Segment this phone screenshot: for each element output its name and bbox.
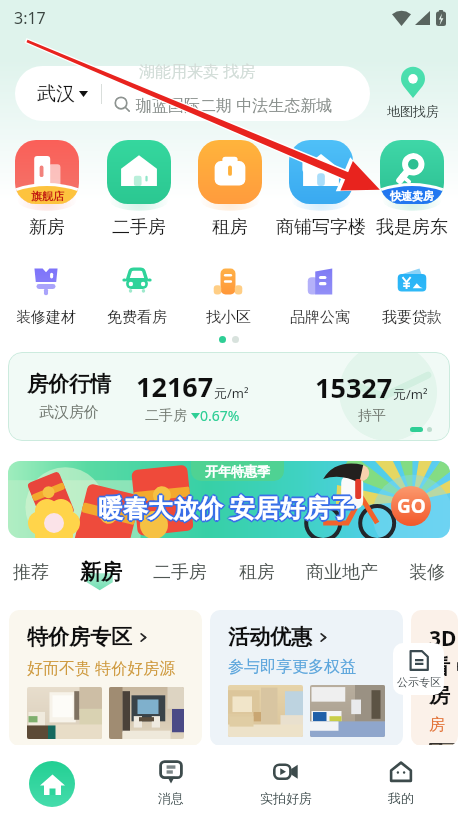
staticText: 珈蓝国际二期 中法生态新城 [136, 94, 333, 116]
staticText: 免费看房 [107, 308, 167, 327]
staticText: 3D看房 [429, 624, 458, 708]
staticText: 实拍好房 [260, 790, 312, 806]
other: 地图找房 [401, 69, 425, 98]
button[interactable]: 武汉 [15, 66, 370, 121]
other: 首页 [29, 761, 75, 807]
button[interactable]: 装修 [404, 558, 450, 587]
button[interactable]: 消息 [114, 745, 228, 820]
staticText: 快速卖房 [390, 189, 434, 203]
staticText: 商业地产 [306, 561, 378, 584]
staticText: 二手房 [112, 216, 166, 239]
button[interactable]: 我要贷款 [366, 266, 458, 327]
staticText: 武汉 [37, 82, 75, 106]
staticText: 12167 [136, 368, 214, 405]
staticText: 新房 [29, 216, 65, 239]
button[interactable]: 装修建材 [0, 266, 91, 327]
staticText: 暖春大放价 安居好房子 [97, 491, 354, 525]
staticText: 15327 [315, 369, 393, 406]
button[interactable]: 房价行情 [8, 352, 450, 441]
staticText: 活动优惠 [228, 624, 312, 650]
staticText: 暖春大放价 安居好房子 [97, 489, 354, 523]
staticText: 旗舰店 [31, 189, 64, 203]
button[interactable]: 地图找房 [373, 69, 453, 119]
staticText: 租房 [212, 216, 248, 239]
staticText: 暖春大放价 安居好房子 [96, 490, 353, 524]
button[interactable]: 实拍好房 [228, 745, 343, 820]
button[interactable]: 商业地产 [301, 558, 383, 587]
staticText: 公示专区 [397, 675, 441, 689]
button[interactable]: 推荐 [8, 558, 54, 587]
staticText: 暖春大放价 安居好房子 [98, 488, 355, 522]
button[interactable]: 旗舰店 [1, 140, 93, 239]
staticText: 参与即享更多权益 [228, 657, 356, 677]
staticText: 暖春大放价 安居好房子 [98, 492, 355, 526]
staticText: 房源全景看 [429, 715, 458, 735]
button[interactable]: 找小区 [182, 266, 274, 327]
staticText: 推荐 [13, 561, 49, 584]
staticText: 湖能用来卖 找房 [139, 60, 256, 82]
staticText: 找小区 [206, 308, 251, 327]
button[interactable]: 公示专区 [393, 643, 444, 695]
staticText: 0.67% [200, 406, 240, 425]
staticText: 二手房 [145, 407, 187, 425]
staticText: 持平 [358, 407, 386, 425]
staticText: 暖春大放价 安居好房子 [98, 490, 355, 524]
staticText: GO [397, 493, 426, 519]
staticText: 商铺写字楼 [276, 216, 366, 239]
staticText: 特价房专区 [27, 624, 132, 650]
button[interactable]: 首页 [0, 745, 114, 820]
staticText: 3:17 [14, 7, 46, 29]
button[interactable]: 新房 [75, 556, 127, 588]
staticText: 我要贷款 [382, 308, 442, 327]
staticText: 装修 [409, 561, 445, 584]
button[interactable]: 活动优惠 [210, 610, 403, 746]
staticText: 地图找房 [387, 103, 439, 119]
button[interactable]: 品牌公寓 [274, 266, 366, 327]
button[interactable]: 快速卖房 [366, 140, 457, 239]
staticText: 租房 [239, 561, 275, 584]
button[interactable]: 免费看房 [91, 266, 182, 327]
staticText: 暖春大放价 安居好房子 [99, 491, 356, 525]
staticText: 装修建材 [16, 308, 76, 327]
staticText: 暖春大放价 安居好房子 [99, 489, 356, 523]
button[interactable]: 二手房 [93, 140, 184, 239]
button[interactable]: 3D看房 [411, 610, 458, 746]
staticText: 二手房 [153, 561, 207, 584]
staticText: 元/m² [214, 384, 249, 402]
staticText: 武汉房价 [39, 403, 99, 422]
staticText: 开年特惠季 [205, 463, 270, 479]
button[interactable]: 租房 [234, 558, 280, 587]
staticText: 我是房东 [376, 216, 448, 239]
staticText: 品牌公寓 [290, 308, 350, 327]
staticText: 新房 [80, 559, 122, 585]
button[interactable]: 租房 [184, 140, 275, 239]
staticText: 消息 [158, 790, 184, 806]
button[interactable]: 我的 [343, 745, 458, 820]
staticText: 我的 [388, 790, 414, 806]
staticText: 房价行情 [27, 371, 111, 397]
button[interactable]: 特价房专区 [9, 610, 202, 746]
button[interactable]: 开年特惠季 [8, 461, 450, 538]
button[interactable]: 二手房 [148, 558, 212, 587]
button[interactable]: 商铺写字楼 [275, 140, 366, 239]
staticText: 元/m² [393, 385, 428, 403]
staticText: 好而不贵 特价好房源 [27, 657, 176, 679]
staticText: 暖春大放价 安居好房子 [100, 490, 357, 524]
